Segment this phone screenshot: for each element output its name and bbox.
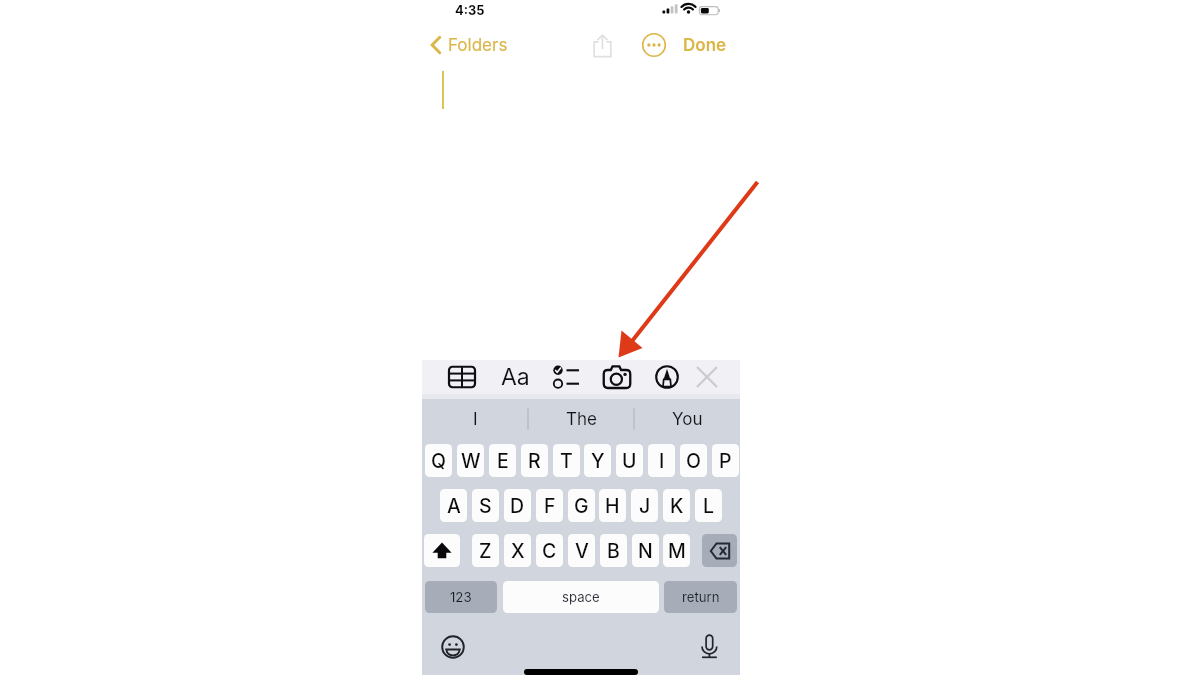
button[interactable]: G (568, 489, 595, 522)
staticText: A (447, 494, 461, 518)
staticText: I (473, 409, 478, 430)
button[interactable]: K (663, 489, 690, 522)
button[interactable]: Done (683, 28, 727, 62)
staticText: C (542, 539, 557, 563)
staticText: 123 (450, 589, 472, 605)
button[interactable]: E (489, 444, 516, 477)
button[interactable]: T (553, 444, 580, 477)
button[interactable]: H (599, 489, 626, 522)
staticText: U (622, 449, 637, 473)
staticText: D (510, 494, 525, 518)
button[interactable]: Aa (496, 360, 534, 394)
button[interactable]: P (712, 444, 739, 477)
button[interactable]: return (664, 581, 737, 613)
button[interactable]: Insert table (443, 360, 481, 394)
button[interactable]: Y (584, 444, 611, 477)
staticText: L (703, 494, 715, 518)
staticText: Y (591, 449, 605, 473)
button[interactable]: A (440, 489, 467, 522)
staticText: W (461, 449, 481, 473)
staticText: K (670, 494, 684, 518)
staticText: I (659, 449, 665, 473)
button[interactable]: X (504, 534, 531, 567)
staticText: E (497, 449, 509, 473)
button[interactable]: The (528, 401, 634, 437)
staticText: O (686, 449, 701, 473)
staticText: P (719, 449, 732, 473)
button[interactable]: 123 (425, 581, 497, 613)
staticText: T (560, 449, 573, 473)
staticText: 4:35 (455, 3, 485, 18)
staticText: B (607, 539, 620, 563)
button[interactable]: J (631, 489, 658, 522)
staticText: J (639, 494, 651, 518)
button[interactable]: M (663, 534, 690, 567)
staticText: F (544, 494, 556, 518)
button[interactable]: Camera (598, 360, 636, 394)
button[interactable]: Shift (424, 534, 460, 567)
staticText: space (562, 589, 600, 605)
staticText: R (528, 449, 541, 473)
button[interactable]: L (695, 489, 722, 522)
button[interactable]: Checklist (547, 360, 585, 394)
button[interactable]: O (680, 444, 707, 477)
button[interactable]: V (568, 534, 595, 567)
staticText: Q (431, 449, 446, 473)
staticText: X (511, 539, 525, 563)
button[interactable]: space (503, 581, 659, 613)
button[interactable]: More (640, 28, 668, 62)
button[interactable]: D (504, 489, 531, 522)
staticText: G (574, 494, 589, 518)
staticText: M (668, 539, 686, 563)
button[interactable]: R (521, 444, 548, 477)
staticText: return (682, 589, 720, 605)
button[interactable]: Emoji (441, 635, 465, 659)
button[interactable]: I (648, 444, 675, 477)
button[interactable]: Z (472, 534, 499, 567)
button[interactable]: B (600, 534, 627, 567)
button[interactable]: W (457, 444, 484, 477)
button[interactable]: S (472, 489, 499, 522)
staticText: You (672, 409, 703, 430)
button[interactable]: Backspace (702, 534, 737, 567)
button[interactable]: Close keyboard (688, 360, 726, 394)
button[interactable]: Share (588, 28, 616, 62)
staticText: The (566, 409, 597, 430)
button[interactable]: U (616, 444, 643, 477)
button[interactable]: Dictation (698, 630, 722, 662)
staticText: N (638, 539, 653, 563)
staticText: V (575, 539, 589, 563)
button[interactable]: C (536, 534, 563, 567)
staticText: Z (479, 539, 492, 563)
staticText: Done (683, 35, 727, 56)
staticText: H (605, 494, 620, 518)
button[interactable]: Markup (648, 360, 686, 394)
button[interactable]: I (422, 401, 528, 437)
button[interactable]: Q (425, 444, 452, 477)
button[interactable]: Folders (427, 28, 508, 62)
button[interactable]: N (632, 534, 659, 567)
button[interactable]: You (634, 401, 740, 437)
staticText: Aa (501, 363, 530, 391)
staticText: S (479, 494, 492, 518)
staticText: Folders (448, 35, 508, 56)
button[interactable]: F (536, 489, 563, 522)
